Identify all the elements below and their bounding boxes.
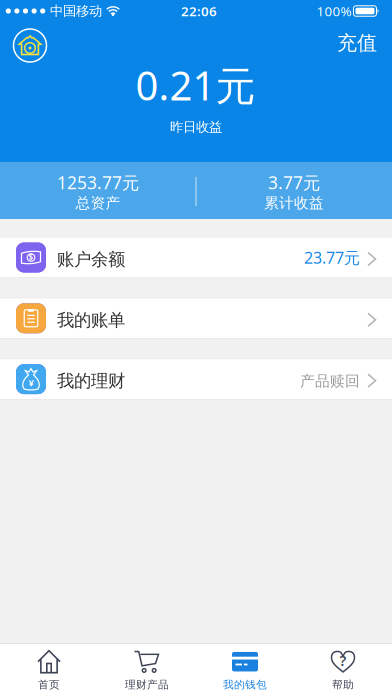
staticText: 首页 xyxy=(38,678,60,691)
staticText: 理财产品 xyxy=(125,678,169,691)
staticText: 充值 xyxy=(337,31,377,55)
staticText: 23.77元 xyxy=(304,247,360,268)
staticText: 累计收益 xyxy=(264,194,324,212)
staticText: 帮助 xyxy=(332,678,354,691)
button[interactable] xyxy=(12,27,48,63)
staticText: 总资产 xyxy=(75,194,120,212)
button[interactable]: 我的钱包 xyxy=(196,644,294,696)
staticText: 22:06 xyxy=(181,2,217,20)
staticText: 0.21元 xyxy=(135,58,255,111)
staticText: 3.77元 xyxy=(268,171,320,194)
button[interactable]: ? xyxy=(294,644,392,696)
button[interactable]: 充值 xyxy=(327,28,387,58)
staticText: 我的账单 xyxy=(57,310,125,331)
staticText: 我的钱包 xyxy=(223,678,267,691)
staticText: 100% xyxy=(316,2,351,20)
staticText: 中国移动 xyxy=(50,3,102,19)
button[interactable]: 我的账单 xyxy=(0,298,392,339)
button[interactable]: $ xyxy=(0,237,392,278)
staticText: 我的理财 xyxy=(57,370,125,392)
staticText: 账户余额 xyxy=(57,249,125,270)
button[interactable]: ¥ xyxy=(0,359,392,400)
staticText: 1253.77元 xyxy=(57,171,139,194)
button[interactable]: 理财产品 xyxy=(98,644,196,696)
button[interactable]: 首页 xyxy=(0,644,98,696)
staticText: 产品赎回 xyxy=(300,372,360,390)
staticText: 昨日收益 xyxy=(170,119,222,135)
staticText: ¥ xyxy=(28,376,33,389)
staticText: $ xyxy=(28,252,33,263)
staticText: ? xyxy=(339,650,346,670)
